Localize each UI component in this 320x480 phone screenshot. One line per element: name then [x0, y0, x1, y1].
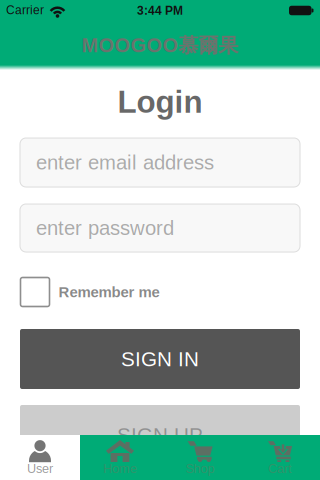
- staticText: Cart: [268, 461, 292, 476]
- staticText: User: [27, 461, 53, 476]
- button[interactable]: Cart: [240, 435, 320, 480]
- staticText: enter password: [36, 217, 174, 239]
- button[interactable]: enter password: [20, 204, 300, 252]
- staticText: Shop: [185, 461, 214, 476]
- staticText: SIGN UP: [117, 423, 203, 447]
- staticText: Remember me: [58, 284, 159, 300]
- button[interactable]: Home: [80, 435, 160, 480]
- staticText: MOOGOO慕爾果: [81, 33, 238, 58]
- staticText: SIGN IN: [121, 347, 199, 371]
- staticText: enter email address: [36, 151, 214, 174]
- staticText: 3:44 PM: [137, 4, 183, 17]
- button[interactable]: User: [0, 435, 80, 480]
- button[interactable]: SIGN IN: [20, 329, 300, 389]
- staticText: Home: [103, 461, 137, 476]
- button[interactable]: SIGN UP: [20, 405, 300, 465]
- button[interactable]: enter email address: [20, 138, 300, 187]
- button[interactable]: Remember me: [20, 277, 159, 306]
- staticText: Login: [117, 84, 202, 119]
- button[interactable]: Shop: [160, 435, 240, 480]
- staticText: Carrier: [6, 3, 44, 17]
